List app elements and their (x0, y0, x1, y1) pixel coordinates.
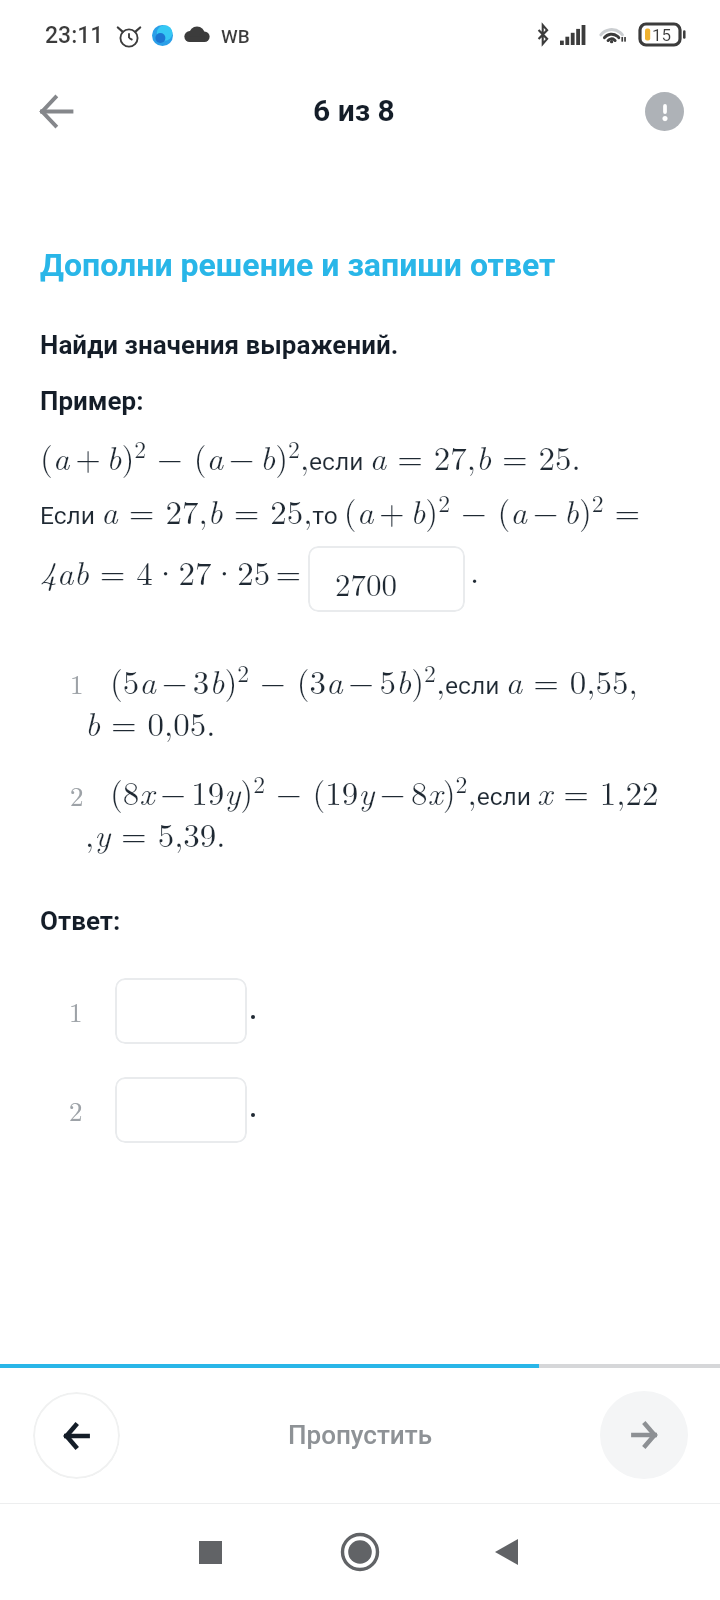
staticText: (a + b)2 − (a − b)2,если a = 27,b = 25. (40, 431, 581, 479)
button[interactable]: Recent apps (175, 1517, 245, 1587)
staticText: 4ab = 4·27·25 = (40, 548, 302, 595)
staticText: Дополни решение и запиши ответ (40, 246, 556, 284)
button[interactable]: Home (325, 1517, 395, 1587)
staticText: Если a = 27,b = 25,то (a + b)2 − (a − b)… (40, 485, 641, 533)
staticText: 2 (69, 1091, 83, 1129)
staticText: . (470, 546, 480, 593)
staticText: 2 (70, 776, 84, 814)
staticText: 6 из 8 (313, 93, 395, 128)
button[interactable]: Back (471, 1517, 541, 1587)
staticText: 1 (69, 992, 83, 1030)
staticText: (8x − 19y)2 − (19y − 8x)2,если x = 1,22 (110, 766, 659, 814)
button[interactable]: Back (26, 81, 86, 141)
button[interactable]: Next question (600, 1391, 688, 1479)
button[interactable]: 2700 (308, 546, 465, 612)
staticText: Ответ: (40, 906, 121, 936)
button[interactable]: Info (645, 92, 684, 131)
button[interactable] (115, 1077, 247, 1143)
staticText: Найди значения выражений. (40, 330, 399, 360)
button[interactable]: Пропустить (288, 1420, 432, 1450)
staticText: ,y = 5,39. (85, 810, 226, 857)
staticText: Пример: (40, 386, 144, 416)
button[interactable] (115, 978, 247, 1044)
staticText: 1 (70, 664, 84, 702)
button[interactable]: Previous question (33, 1392, 120, 1479)
staticText: b = 0,05. (85, 699, 216, 746)
staticText: WB (221, 25, 250, 47)
staticText: 23:11 (45, 22, 104, 49)
staticText: 2700 (335, 561, 397, 605)
staticText: Пропустить (288, 1420, 432, 1450)
staticText: (5a − 3b)2 − (3a − 5b)2,если a = 0,55, (110, 655, 638, 703)
staticText: 15 (652, 25, 672, 45)
